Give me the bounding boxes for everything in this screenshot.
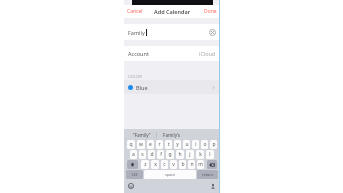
staticText: Family’s bbox=[163, 132, 181, 138]
staticText: p bbox=[212, 141, 216, 148]
button[interactable]: x bbox=[151, 160, 159, 169]
staticText: Add Calendar bbox=[154, 8, 191, 15]
staticText: return bbox=[202, 172, 214, 177]
staticText: h bbox=[178, 151, 182, 158]
button[interactable]: Backspace bbox=[207, 160, 217, 169]
button[interactable]: u bbox=[183, 140, 190, 149]
button[interactable]: t bbox=[165, 140, 172, 149]
staticText: v bbox=[172, 161, 175, 168]
button[interactable]: h bbox=[176, 150, 184, 159]
button[interactable]: 123 bbox=[126, 170, 143, 179]
staticText: k bbox=[199, 151, 202, 158]
button[interactable]: e bbox=[147, 140, 154, 149]
button[interactable]: m bbox=[197, 160, 204, 169]
staticText: e bbox=[149, 141, 152, 148]
button[interactable]: “Family” bbox=[127, 132, 156, 138]
button[interactable]: Dictation bbox=[210, 183, 216, 189]
staticText: COLOR bbox=[128, 74, 142, 80]
button[interactable]: q bbox=[127, 140, 135, 149]
button[interactable]: r bbox=[156, 140, 163, 149]
button[interactable]: c bbox=[161, 160, 168, 169]
button[interactable]: Done bbox=[204, 8, 217, 15]
staticText: d bbox=[150, 151, 154, 158]
staticText: Family bbox=[128, 29, 145, 36]
button[interactable]: space bbox=[144, 170, 196, 179]
button[interactable]: b bbox=[179, 160, 186, 169]
button[interactable]: g bbox=[166, 150, 174, 159]
staticText: r bbox=[158, 141, 161, 148]
button[interactable]: s bbox=[139, 150, 146, 159]
button[interactable]: w bbox=[137, 140, 145, 149]
staticText: space bbox=[165, 172, 176, 177]
button[interactable]: Family’s bbox=[157, 132, 187, 138]
staticText: iCloud bbox=[199, 50, 216, 57]
button[interactable]: y bbox=[174, 140, 181, 149]
button[interactable]: f bbox=[157, 150, 164, 159]
staticText: z bbox=[144, 161, 147, 168]
staticText: t bbox=[168, 141, 170, 148]
button[interactable]: p bbox=[210, 140, 217, 149]
staticText: s bbox=[141, 151, 144, 158]
button[interactable]: Shift bbox=[127, 160, 138, 169]
staticText: j bbox=[189, 151, 191, 158]
staticText: c bbox=[163, 161, 166, 168]
staticText: n bbox=[190, 161, 194, 168]
button[interactable]: Account bbox=[128, 46, 216, 61]
button[interactable]: n bbox=[188, 160, 195, 169]
button[interactable]: v bbox=[170, 160, 177, 169]
staticText: o bbox=[203, 141, 207, 148]
staticText: b bbox=[181, 161, 185, 168]
staticText: w bbox=[139, 141, 143, 148]
staticText: q bbox=[129, 141, 133, 148]
button[interactable]: Family bbox=[128, 24, 216, 40]
staticText: a bbox=[132, 151, 135, 158]
button[interactable]: j bbox=[186, 150, 194, 159]
button[interactable]: Clear text bbox=[209, 29, 216, 36]
staticText: l bbox=[209, 151, 211, 158]
button[interactable]: z bbox=[141, 160, 149, 169]
button[interactable]: i bbox=[192, 140, 199, 149]
staticText: 123 bbox=[131, 172, 138, 177]
button[interactable]: Cancel bbox=[127, 8, 143, 15]
staticText: Account bbox=[128, 50, 149, 57]
button[interactable]: return bbox=[197, 170, 218, 179]
staticText: x bbox=[154, 161, 157, 168]
staticText: “Family” bbox=[133, 132, 151, 138]
button[interactable]: l bbox=[206, 150, 214, 159]
button[interactable]: a bbox=[130, 150, 137, 159]
staticText: m bbox=[198, 161, 203, 168]
button[interactable]: Emoji keyboard bbox=[128, 183, 134, 189]
button[interactable]: k bbox=[196, 150, 204, 159]
staticText: Blue bbox=[136, 84, 148, 91]
staticText: g bbox=[168, 151, 172, 158]
button[interactable]: d bbox=[148, 150, 155, 159]
button[interactable]: o bbox=[201, 140, 208, 149]
staticText: y bbox=[176, 141, 179, 148]
staticText: f bbox=[160, 151, 162, 158]
staticText: u bbox=[185, 141, 189, 148]
button[interactable]: Blue bbox=[128, 80, 216, 94]
staticText: i bbox=[195, 141, 197, 148]
